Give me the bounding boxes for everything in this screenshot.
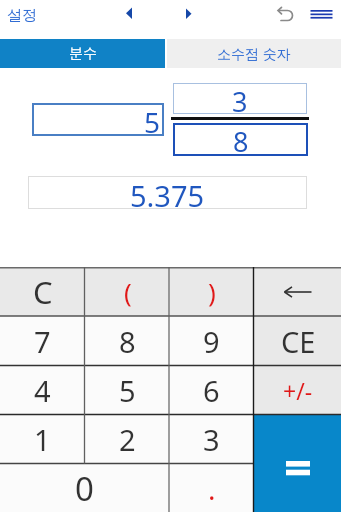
button[interactable]: . — [169, 464, 254, 512]
staticText: 소수점 숫자 — [217, 44, 291, 63]
button[interactable]: 7 — [0, 316, 85, 366]
button[interactable]: 3 — [169, 415, 254, 464]
button[interactable] — [182, 4, 200, 23]
staticText: 3 — [203, 420, 220, 459]
button[interactable]: 8 — [173, 123, 308, 156]
staticText: 5 — [119, 371, 136, 410]
staticText: CE — [281, 322, 316, 361]
staticText: 설정 — [7, 6, 37, 25]
button[interactable]: 5.375 — [28, 176, 307, 209]
button[interactable]: 8 — [85, 316, 170, 366]
button[interactable]: 5 — [32, 103, 164, 136]
button[interactable]: 분수 — [0, 39, 165, 68]
button[interactable] — [254, 415, 341, 512]
button[interactable]: 1 — [0, 415, 85, 464]
button[interactable]: 소수점 숫자 — [167, 39, 341, 68]
staticText: 4 — [34, 371, 51, 410]
button[interactable]: 2 — [85, 415, 170, 464]
staticText: 5.375 — [130, 176, 205, 209]
staticText: 6 — [203, 371, 220, 410]
staticText: 3 — [232, 83, 248, 114]
staticText: C — [33, 271, 53, 313]
staticText: 0 — [75, 466, 94, 511]
staticText: ) — [208, 274, 216, 309]
button[interactable] — [254, 267, 341, 316]
staticText: 5 — [144, 103, 161, 136]
button[interactable]: 4 — [0, 366, 85, 415]
staticText: 8 — [233, 123, 249, 156]
button[interactable] — [274, 3, 296, 25]
staticText: . — [208, 470, 216, 508]
button[interactable]: ) — [169, 267, 254, 316]
button[interactable]: 5 — [85, 366, 170, 415]
button[interactable]: 3 — [173, 83, 307, 114]
button[interactable]: CE — [254, 316, 341, 366]
staticText: 1 — [34, 420, 51, 459]
staticText: 2 — [119, 420, 136, 459]
staticText: ( — [124, 274, 132, 309]
staticText: 8 — [119, 322, 136, 361]
button[interactable] — [308, 6, 335, 23]
staticText: 7 — [34, 322, 51, 361]
button[interactable]: 6 — [169, 366, 254, 415]
button[interactable]: 0 — [0, 464, 169, 512]
button[interactable]: +/- — [254, 366, 341, 415]
button[interactable]: ( — [85, 267, 170, 316]
staticText: +/- — [283, 375, 313, 406]
button[interactable]: C — [0, 267, 85, 316]
button[interactable] — [120, 4, 138, 23]
staticText: 분수 — [69, 45, 97, 63]
staticText: 9 — [203, 322, 220, 361]
button[interactable]: 9 — [169, 316, 254, 366]
button[interactable]: 설정 — [7, 6, 37, 25]
